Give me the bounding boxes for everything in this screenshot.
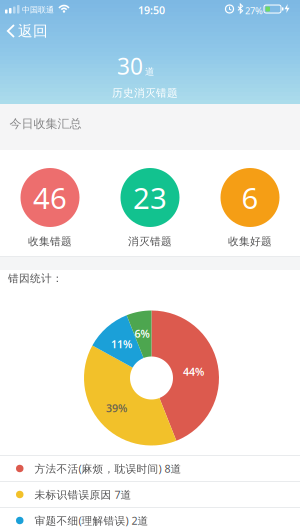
staticText: 历史消灭错题 [112, 86, 178, 99]
staticText: 6% [134, 326, 149, 341]
staticText: 错因统计： [8, 272, 63, 285]
button[interactable]: 23 [100, 150, 200, 256]
staticText: 审题不细(理解错误) 2道 [34, 513, 148, 528]
staticText: 23 [133, 178, 167, 217]
staticText: 收集好题 [228, 235, 272, 248]
button[interactable]: 未标识错误原因 7道 [0, 482, 300, 507]
staticText: 中国联通 [22, 5, 54, 15]
staticText: 未标识错误原因 7道 [34, 487, 131, 502]
staticText: 今日收集汇总 [9, 116, 81, 131]
button[interactable]: 返回 [0, 18, 54, 44]
staticText: 6 [241, 178, 258, 217]
button[interactable]: 6 [200, 150, 300, 256]
staticText: 30 [117, 51, 143, 81]
staticText: 收集错题 [28, 235, 72, 248]
staticText: 39% [106, 401, 127, 415]
staticText: 返回 [18, 22, 48, 40]
staticText: 方法不活(麻烦，耽误时间) 8道 [34, 461, 181, 476]
staticText: 道 [145, 66, 154, 77]
button[interactable]: 审题不细(理解错误) 2道 [0, 508, 300, 532]
staticText: 46 [33, 178, 67, 217]
button[interactable]: 46 [0, 150, 100, 256]
staticText: 27% [245, 4, 263, 17]
staticText: 44% [183, 364, 204, 379]
button[interactable]: 方法不活(麻烦，耽误时间) 8道 [0, 456, 300, 481]
staticText: 消灭错题 [128, 235, 172, 248]
staticText: 11% [111, 337, 132, 351]
staticText: 19:50 [138, 3, 165, 17]
